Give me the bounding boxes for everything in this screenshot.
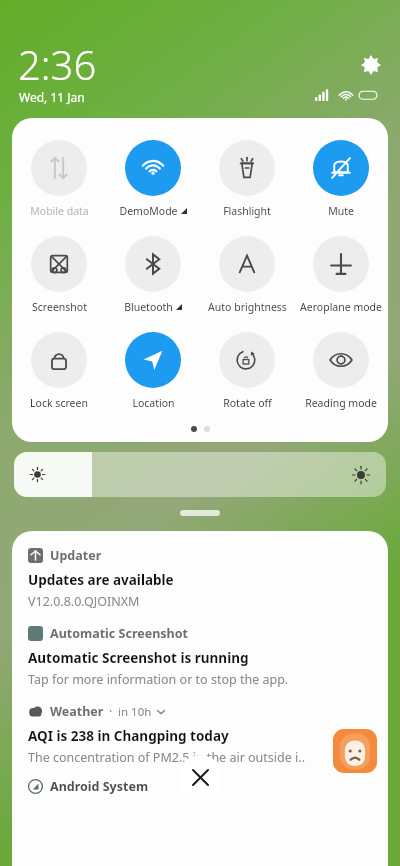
staticText: Mute (328, 204, 354, 218)
staticText: The concentration of PM2.5 in the air ou… (28, 749, 305, 766)
button[interactable]: Rotate off (200, 332, 294, 410)
staticText: Automatic Screenshot is running (28, 649, 249, 667)
staticText: AQI is 238 in Changping today (28, 727, 229, 745)
staticText: Reading mode (305, 396, 377, 410)
staticText: Wed, 11 Jan (19, 89, 85, 105)
staticText: · (109, 703, 113, 720)
button[interactable]: Bluetooth (106, 236, 200, 314)
staticText: 2:36 (18, 37, 97, 91)
staticText: Location (132, 396, 175, 410)
staticText: Bluetooth (124, 300, 173, 314)
staticText: Mobile data (30, 204, 89, 218)
button[interactable]: Flashlight (200, 140, 294, 218)
staticText: Android System (50, 778, 149, 795)
button[interactable]: Automatic Screenshot (12, 625, 388, 688)
staticText: Auto brightness (208, 300, 287, 314)
button[interactable]: Screenshot (12, 236, 106, 314)
button[interactable]: Settings (357, 51, 385, 79)
staticText: Weather (50, 703, 104, 720)
staticText: DemoMode (119, 204, 178, 218)
button[interactable]: DemoMode (106, 140, 200, 218)
staticText: Aeroplane mode (300, 300, 382, 314)
staticText: V12.0.8.0.QJOINXM (28, 593, 140, 610)
staticText: Automatic Screenshot (50, 625, 188, 642)
staticText: Updates are available (28, 571, 174, 589)
staticText: Screenshot (32, 300, 87, 314)
staticText: Flashlight (223, 204, 271, 218)
staticText: in 10h (118, 704, 152, 720)
staticText: Tap for more information or to stop the … (28, 671, 289, 688)
button[interactable]: Mute (294, 140, 388, 218)
button[interactable]: Close (178, 755, 222, 799)
button[interactable]: Weather (12, 703, 388, 766)
button[interactable]: Updater (12, 547, 388, 610)
button[interactable]: Brightness (14, 452, 386, 497)
staticText: Rotate off (223, 396, 272, 410)
button[interactable]: Reading mode (294, 332, 388, 410)
staticText: Updater (50, 547, 102, 564)
staticText: Lock screen (30, 396, 88, 410)
button[interactable]: Aeroplane mode (294, 236, 388, 314)
button[interactable]: Auto brightness (200, 236, 294, 314)
button[interactable]: Location (106, 332, 200, 410)
button[interactable]: Mobile data (12, 140, 106, 218)
button[interactable]: Lock screen (12, 332, 106, 410)
